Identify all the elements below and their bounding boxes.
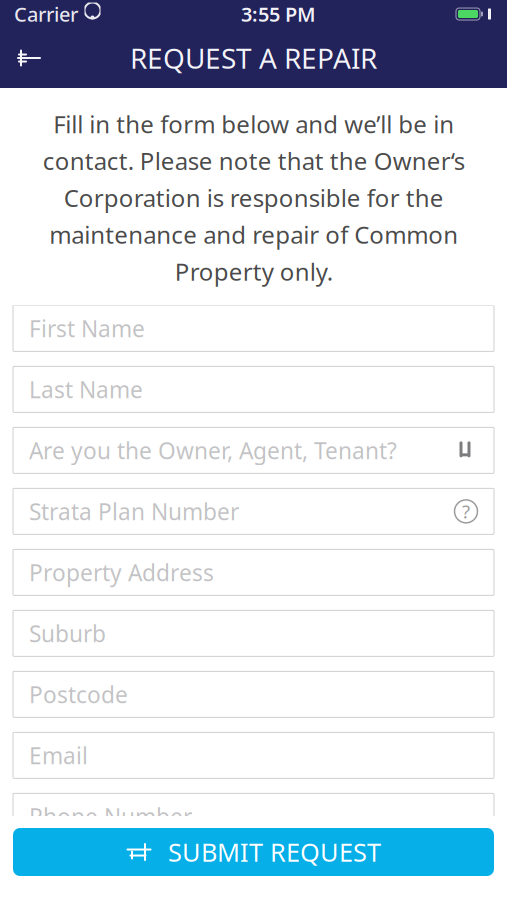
staticText: REQUEST A REPAIR [130, 39, 377, 77]
staticText: Phone Number [29, 801, 192, 831]
button[interactable]: Suburb [13, 610, 494, 656]
staticText: Are you the Owner, Agent, Tenant? [29, 435, 397, 465]
staticText: Tell us about the repair that's needed [29, 862, 428, 892]
staticText: First Name [29, 313, 145, 343]
button[interactable]: Phone Number [13, 793, 494, 839]
button[interactable]: Email [13, 732, 494, 778]
button[interactable]: Are you the Owner, Agent, Tenant? [13, 427, 494, 473]
staticText: Property Address [29, 557, 214, 587]
staticText: Email [29, 740, 88, 770]
button[interactable]: SUBMIT REQUEST [13, 828, 494, 876]
staticText: Last Name [29, 374, 143, 404]
staticText: Suburb [29, 618, 106, 648]
button[interactable]: Tell us about the repair that's needed [13, 854, 494, 900]
button[interactable]: Strata Plan Number [13, 488, 494, 534]
staticText: Carrier [14, 1, 78, 27]
button[interactable]: Last Name [13, 366, 494, 412]
staticText: ? [462, 499, 470, 524]
staticText: Strata Plan Number [29, 496, 239, 526]
button[interactable]: Property Address [13, 549, 494, 595]
button[interactable]: Postcode [13, 671, 494, 717]
button[interactable]: Back [0, 35, 58, 81]
staticText: 3:55 PM [241, 1, 316, 27]
staticText: Postcode [29, 679, 128, 709]
staticText: SUBMIT REQUEST [168, 835, 381, 869]
button[interactable]: First Name [13, 305, 494, 351]
staticText: Fill in the form below and we’ll be in c… [42, 108, 464, 287]
